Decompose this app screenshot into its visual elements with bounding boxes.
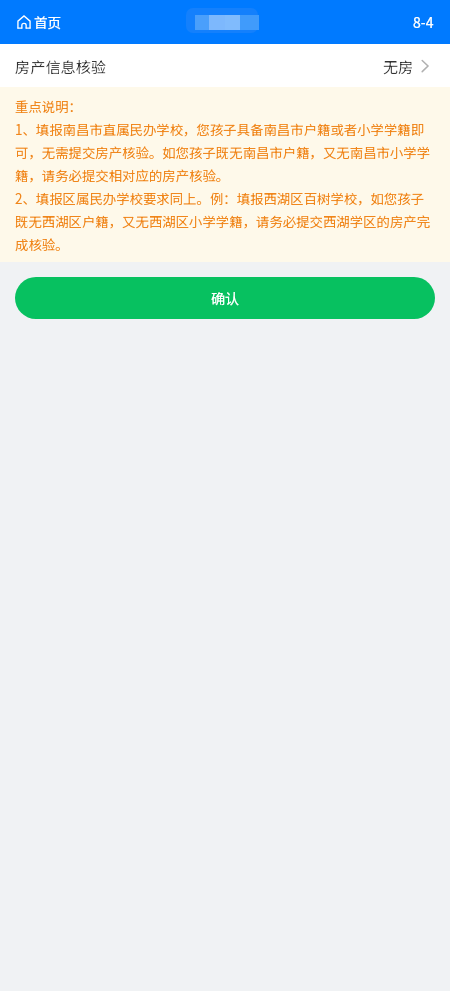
staticText: 1、填报南昌市直属民办学校，您孩子具备南昌市户籍或者小学学籍即可，无需提交房产核… — [15, 117, 435, 186]
staticText: 无房 — [383, 55, 414, 77]
staticText: 房产信息核验 — [15, 55, 107, 77]
staticText: 重点说明： — [15, 94, 82, 117]
staticText: 首页 — [34, 12, 62, 32]
button[interactable]: 确认 — [15, 277, 435, 319]
button[interactable]: 首页 — [0, 12, 70, 32]
staticText: 8-4 — [413, 12, 434, 32]
staticText: 2、填报区属民办学校要求同上。例：填报西湖区百树学校，如您孩子既无西湖区户籍，又… — [15, 186, 435, 255]
staticText: 确认 — [211, 288, 239, 308]
button[interactable]: 房产信息核验 — [0, 44, 450, 87]
